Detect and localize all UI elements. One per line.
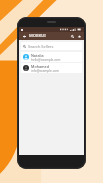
staticText: Natalia xyxy=(31,53,44,58)
staticText: info@example.com xyxy=(31,69,59,73)
staticText: Search Sellers xyxy=(28,44,54,49)
button[interactable]: Search xyxy=(69,33,75,39)
staticText: Mohamed xyxy=(31,64,49,69)
button[interactable]: Natalia xyxy=(21,52,82,62)
staticText: MOBKUI Marketpla… xyxy=(29,33,69,39)
button[interactable]: Search Sellers xyxy=(21,42,82,50)
button[interactable]: Back xyxy=(21,33,27,39)
staticText: hello@example.com xyxy=(31,58,61,62)
button[interactable]: Mohamed xyxy=(21,63,82,73)
button[interactable]: More options xyxy=(76,33,82,39)
